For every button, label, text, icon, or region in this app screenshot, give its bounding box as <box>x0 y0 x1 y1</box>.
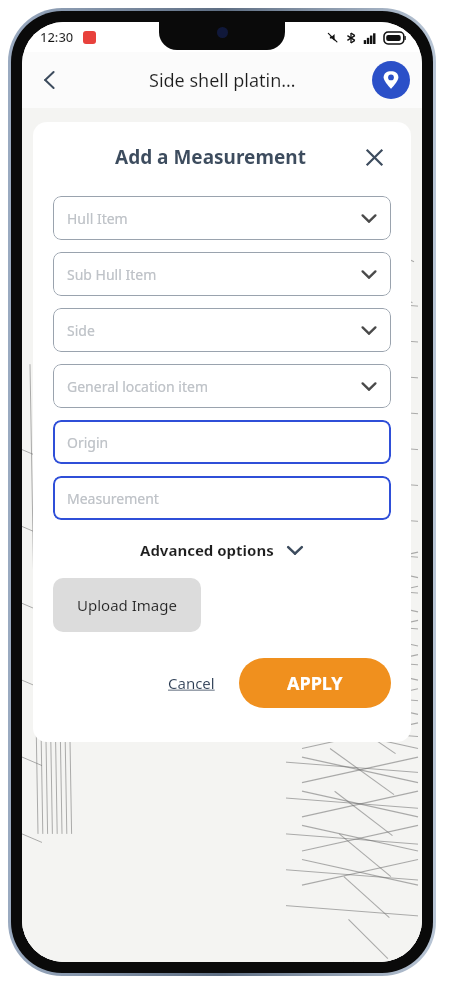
staticText: General location item <box>67 377 361 396</box>
staticText: Sub Hull Item <box>67 265 361 284</box>
button[interactable]: Sub Hull Item <box>53 252 391 296</box>
staticText: Hull Item <box>67 209 361 228</box>
staticText: 12:30 <box>40 28 74 46</box>
button[interactable]: Upload Image <box>53 578 201 632</box>
staticText: APPLY <box>287 671 343 696</box>
button[interactable]: Measurement <box>53 476 391 520</box>
staticText: Upload Image <box>77 595 177 615</box>
staticText: Advanced options <box>140 540 274 560</box>
button[interactable]: Cancel <box>160 665 223 701</box>
staticText: Measurement <box>67 489 159 508</box>
staticText: Side shell platin… <box>149 68 296 93</box>
button[interactable]: APPLY <box>239 658 391 708</box>
button[interactable]: General location item <box>53 364 391 408</box>
staticText: Add a Measurement <box>115 144 306 170</box>
button[interactable]: Close <box>357 140 391 174</box>
button[interactable]: Hull Item <box>53 196 391 240</box>
staticText: Cancel <box>168 673 215 693</box>
staticText: Origin <box>67 433 109 452</box>
button[interactable]: Side <box>53 308 391 352</box>
staticText: Side <box>67 321 361 340</box>
button[interactable]: Origin <box>53 420 391 464</box>
button[interactable]: Location <box>372 61 410 99</box>
button[interactable]: Back <box>28 58 72 102</box>
button[interactable]: Advanced options <box>53 540 391 560</box>
